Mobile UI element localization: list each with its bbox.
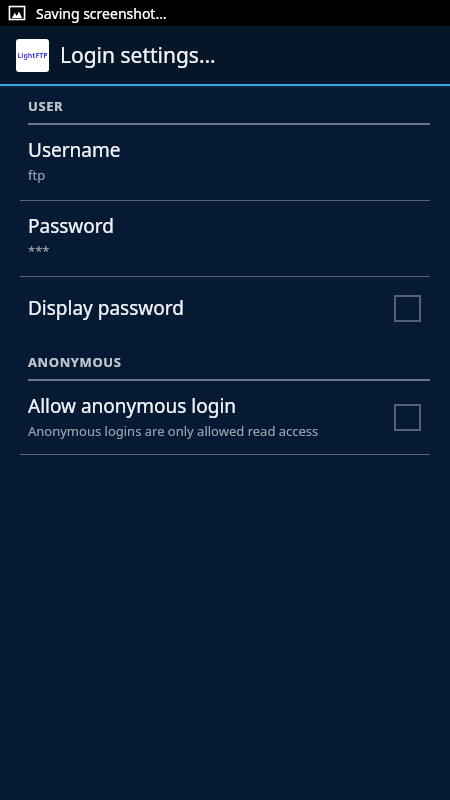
button[interactable]: Allow anonymous login bbox=[0, 381, 450, 454]
button[interactable]: Password bbox=[0, 201, 450, 276]
staticText: USER bbox=[28, 97, 64, 115]
button[interactable]: LightFTP bbox=[0, 26, 450, 84]
staticText: LightFTP bbox=[17, 51, 48, 61]
staticText: Saving screenshot… bbox=[36, 4, 167, 23]
staticText: Display password bbox=[28, 295, 184, 321]
staticText: ftp bbox=[28, 166, 46, 184]
staticText: Allow anonymous login bbox=[28, 393, 237, 419]
staticText: Anonymous logins are only allowed read a… bbox=[28, 422, 319, 440]
staticText: Username bbox=[28, 137, 121, 163]
other: Allow anonymous login bbox=[388, 398, 426, 436]
button[interactable]: Username bbox=[0, 125, 450, 200]
other: Display password bbox=[388, 289, 426, 327]
staticText: *** bbox=[28, 242, 50, 260]
staticText: ANONYMOUS bbox=[28, 353, 122, 371]
staticText: Password bbox=[28, 213, 114, 239]
staticText: Login settings… bbox=[60, 41, 216, 70]
button[interactable]: Display password bbox=[0, 277, 450, 341]
